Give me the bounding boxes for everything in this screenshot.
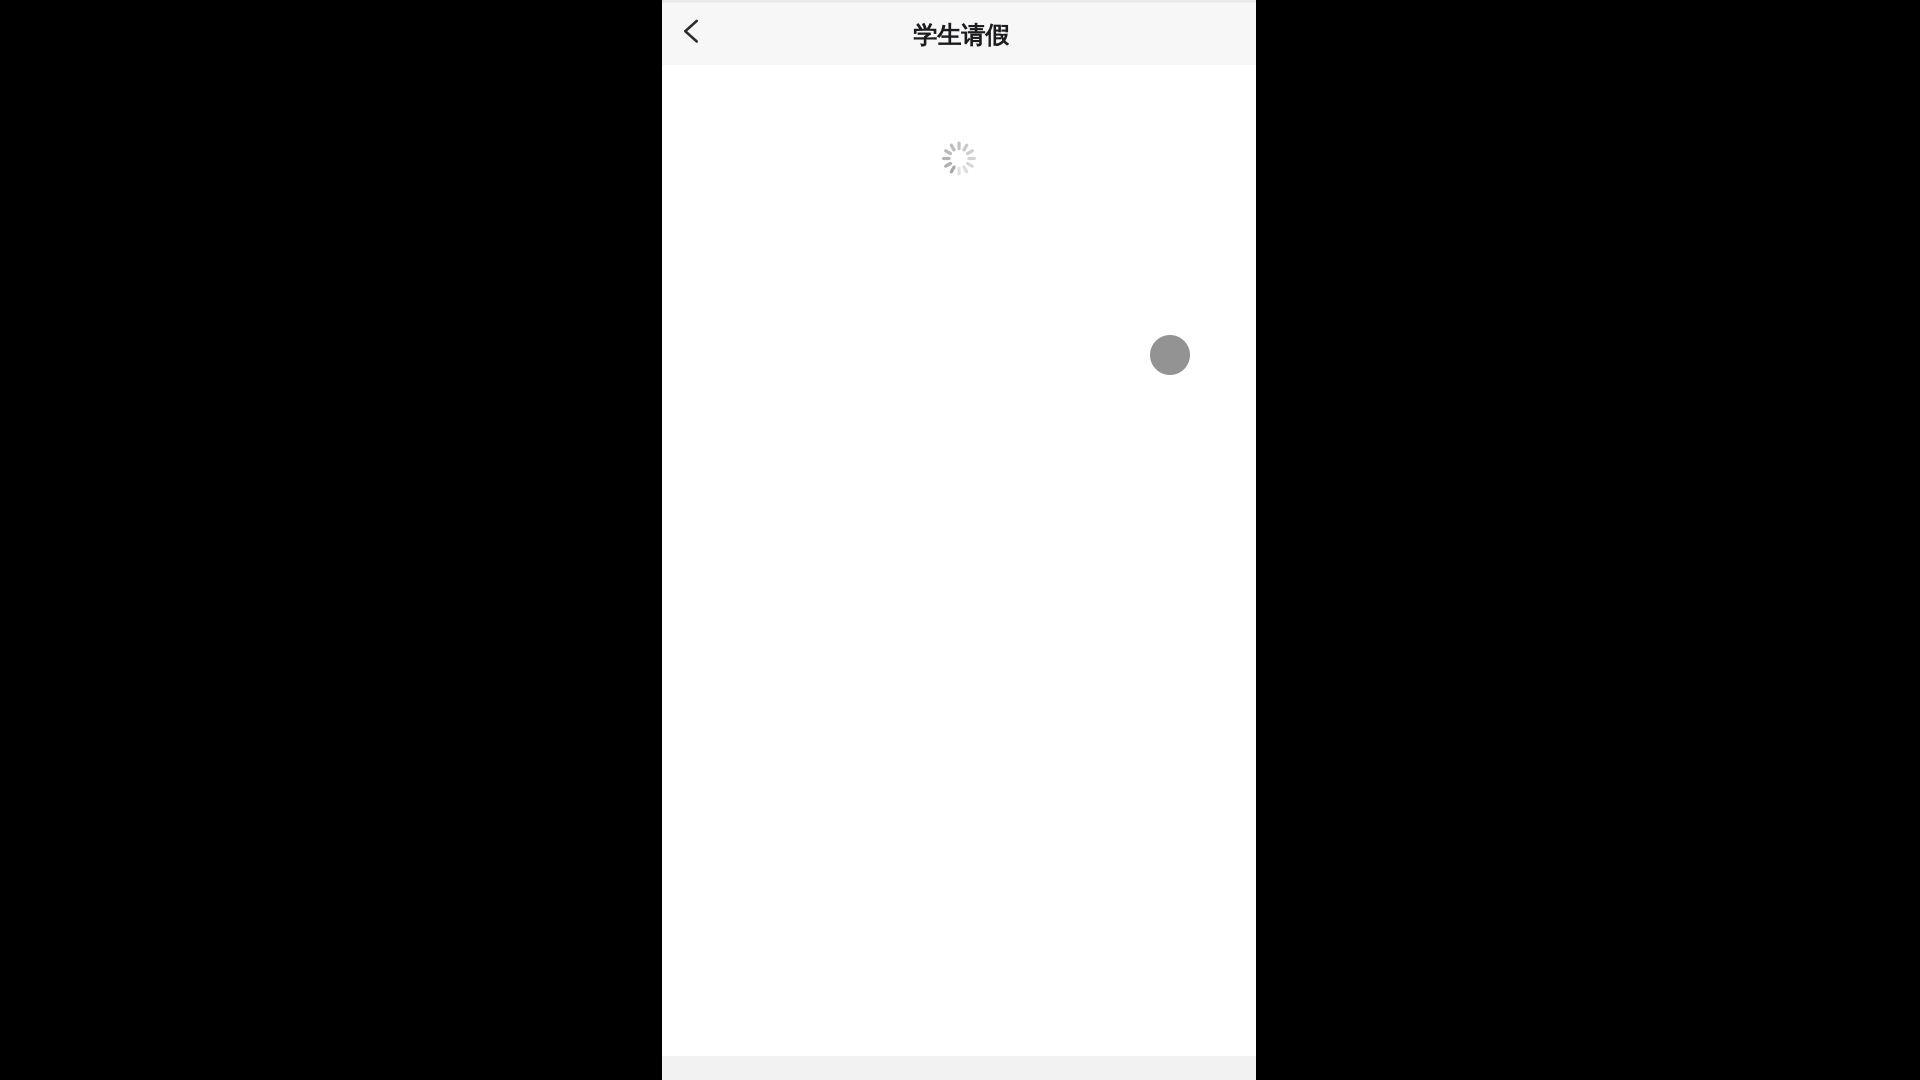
button[interactable]: Back (669, 9, 713, 53)
staticText: 学生请假 (913, 21, 1009, 50)
button[interactable]: Floating assistant (1150, 335, 1190, 375)
